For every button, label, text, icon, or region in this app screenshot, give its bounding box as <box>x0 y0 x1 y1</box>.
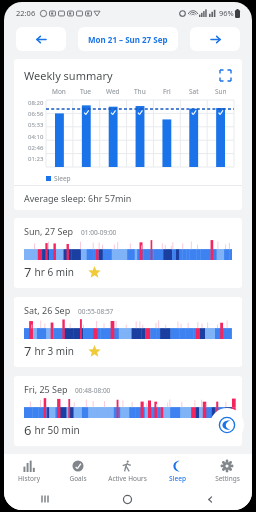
staticText: Goals <box>69 474 87 483</box>
staticText: Fri <box>163 87 171 96</box>
staticText: hr 50 min <box>32 423 80 437</box>
staticText: 05:33 <box>28 121 44 129</box>
staticText: 01:00-09:00 <box>81 228 117 237</box>
staticText: Mon 21 – Sun 27 Sep <box>88 34 168 45</box>
staticText: Wed <box>106 87 120 96</box>
staticText: 00:48-08:00 <box>75 386 111 395</box>
staticText: hr 3 min <box>32 344 74 358</box>
button[interactable]: Next week <box>190 27 240 51</box>
button[interactable]: Sleep <box>152 454 202 488</box>
button[interactable]: Mon 21 – Sun 27 Sep <box>78 27 178 51</box>
staticText: 04:10 <box>28 133 44 141</box>
button[interactable]: History <box>4 454 53 488</box>
button[interactable]: Back <box>169 488 252 510</box>
staticText: hr 6 min <box>32 265 74 279</box>
staticText: Fri, 25 Sep <box>24 383 68 395</box>
staticText: History <box>18 474 40 483</box>
button[interactable]: Expand chart <box>216 66 234 84</box>
staticText: 06:56 <box>28 110 44 118</box>
staticText: Settings <box>215 474 240 483</box>
staticText: 7 <box>24 263 32 281</box>
button[interactable]: Add sleep record <box>210 408 244 442</box>
button[interactable]: Goals <box>53 454 102 488</box>
staticText: 96% <box>219 8 234 18</box>
staticText: Active Hours <box>108 474 147 483</box>
staticText: Sleep <box>54 174 71 183</box>
staticText: Sat <box>189 87 199 96</box>
button[interactable]: Sat, 26 Sep <box>14 297 242 367</box>
staticText: 08:20 <box>28 99 44 107</box>
staticText: 6 <box>24 421 32 439</box>
staticText: 02:46 <box>28 144 44 152</box>
staticText: 7 <box>24 342 32 360</box>
button[interactable]: Fri, 25 Sep <box>14 376 242 446</box>
staticText: Mon <box>52 87 66 96</box>
staticText: 22:06 <box>16 8 36 18</box>
staticText: Sleep <box>169 474 186 483</box>
button[interactable]: Settings <box>202 454 252 488</box>
button[interactable]: Recents <box>4 488 86 510</box>
button[interactable]: Sun, 27 Sep <box>14 218 242 288</box>
button[interactable]: Previous week <box>16 27 66 51</box>
staticText: Average sleep: 6hr 57min <box>24 192 132 204</box>
staticText: Tue <box>80 87 91 96</box>
staticText: Sun <box>215 87 227 96</box>
staticText: 00:55-08:57 <box>78 307 114 316</box>
staticText: Sun, 27 Sep <box>24 225 74 237</box>
staticText: Sat, 26 Sep <box>24 304 71 316</box>
button[interactable]: Home <box>86 488 169 510</box>
staticText: Weekly summary <box>24 68 113 83</box>
staticText: Thu <box>134 87 146 96</box>
button[interactable]: Active Hours <box>102 454 152 488</box>
staticText: 01:23 <box>28 155 44 163</box>
